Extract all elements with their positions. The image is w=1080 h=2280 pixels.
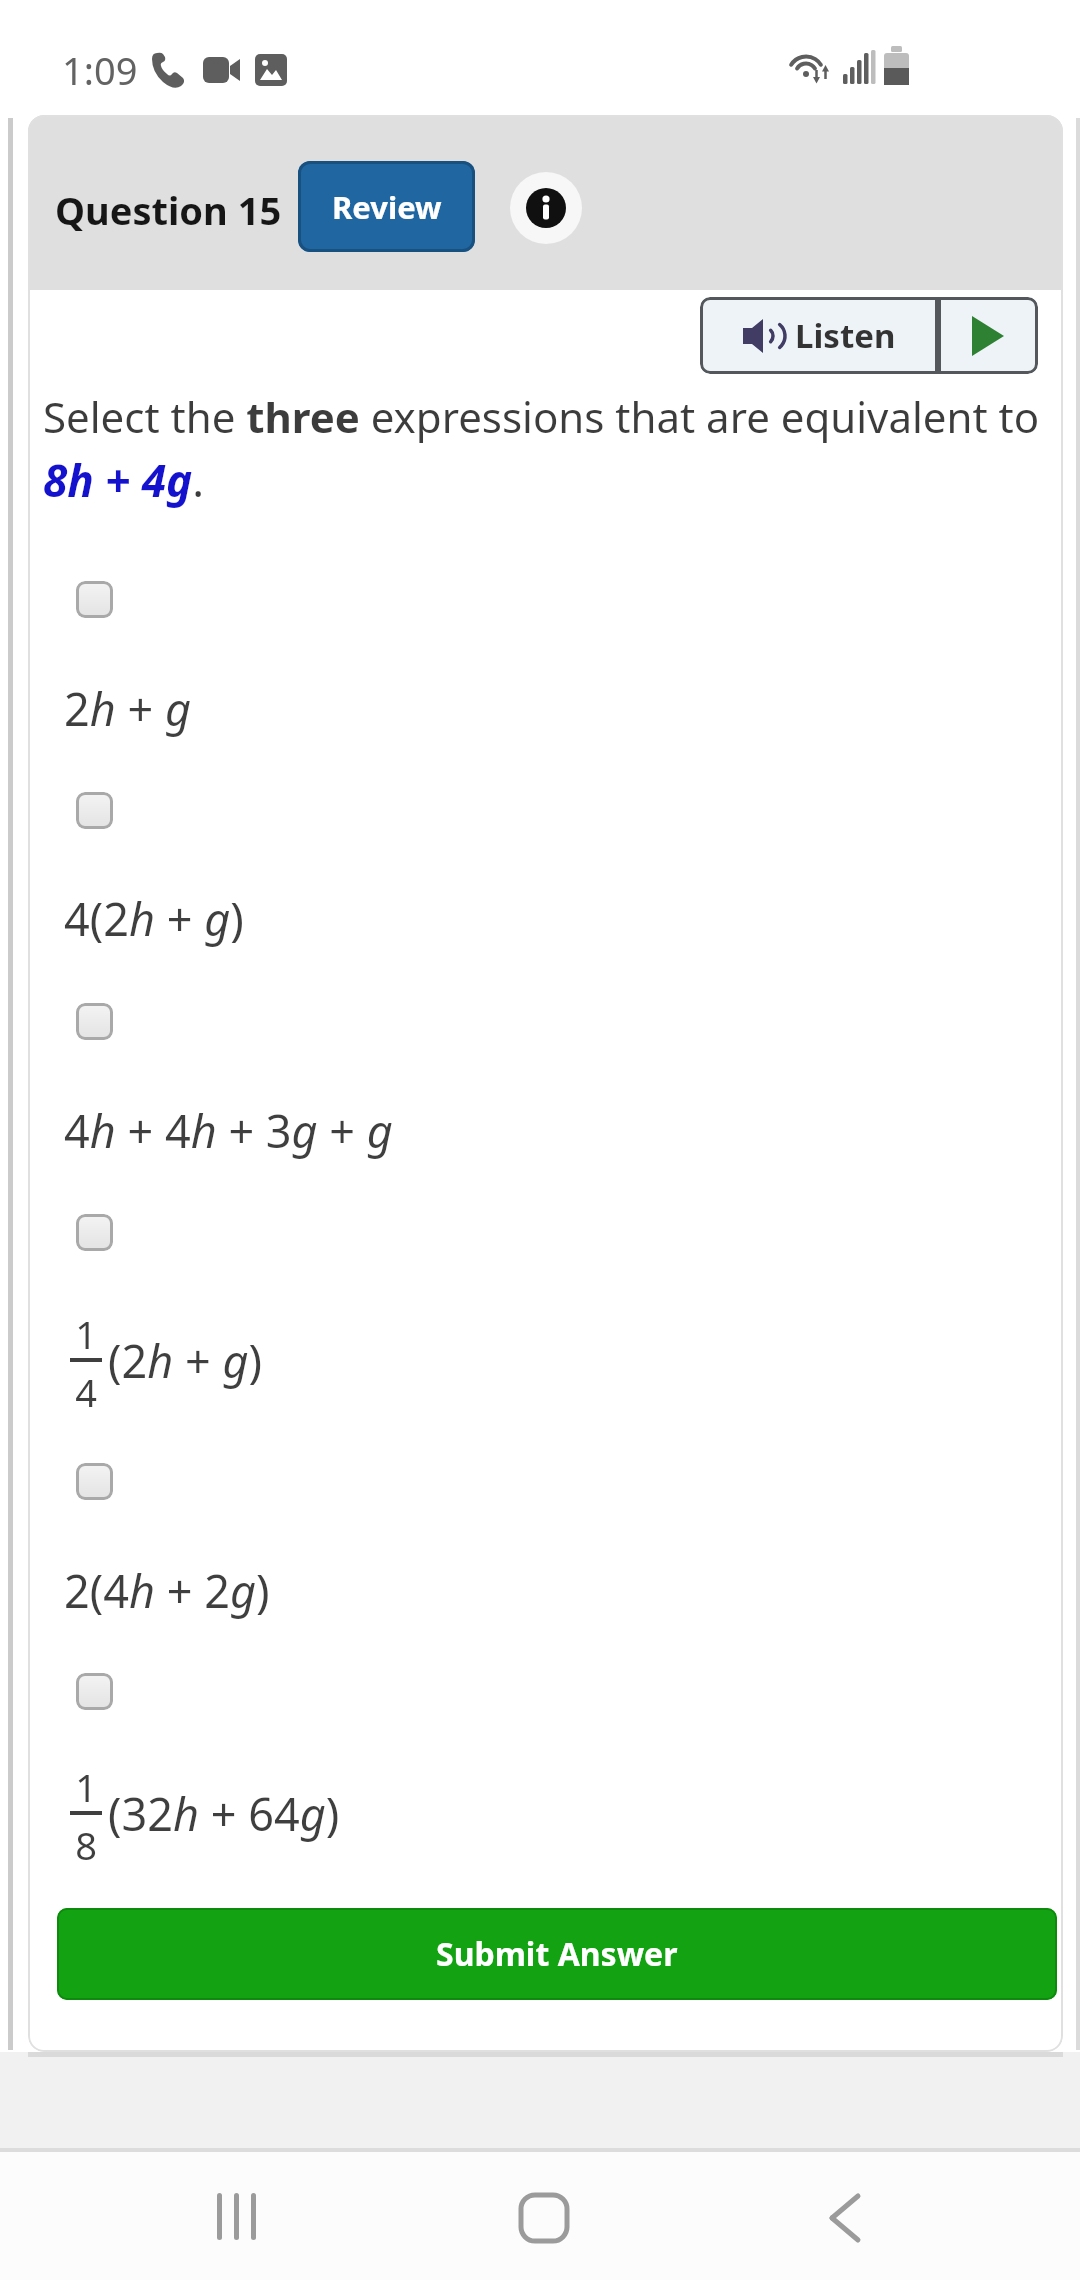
staticText: Review — [332, 186, 442, 228]
button[interactable]: Submit Answer — [57, 1908, 1057, 2000]
button[interactable] — [510, 172, 582, 244]
staticText: Submit Answer — [436, 1932, 678, 1976]
button[interactable]: Review — [298, 161, 475, 252]
staticText: Select the three expressions that are eq… — [43, 388, 1040, 445]
staticText: (2h + g) — [108, 1330, 262, 1391]
button[interactable] — [76, 581, 113, 618]
staticText: Question 15 — [55, 184, 282, 236]
staticText: 2h + g — [64, 678, 191, 739]
staticText: 1 — [70, 1761, 102, 1813]
staticText: 4 — [70, 1366, 102, 1418]
button[interactable] — [810, 2180, 885, 2255]
staticText: 1:09 — [62, 44, 138, 96]
staticText: 8h + 4g. — [43, 450, 205, 510]
button[interactable]: Listen — [700, 297, 938, 374]
staticText: 4(2h + g) — [64, 888, 244, 949]
button[interactable] — [938, 297, 1038, 374]
button[interactable] — [200, 2180, 280, 2255]
button[interactable] — [76, 792, 113, 829]
button[interactable] — [505, 2180, 580, 2255]
staticText: 1 — [70, 1308, 102, 1360]
staticText: Listen — [795, 313, 896, 358]
staticText: 2(4h + 2g) — [64, 1560, 270, 1621]
button[interactable] — [76, 1003, 113, 1040]
button[interactable] — [76, 1463, 113, 1500]
button[interactable] — [76, 1673, 113, 1710]
staticText: (32h + 64g) — [108, 1783, 340, 1844]
staticText: 4h + 4h + 3g + g — [64, 1100, 393, 1161]
button[interactable] — [76, 1214, 113, 1251]
staticText: 8 — [70, 1819, 102, 1871]
